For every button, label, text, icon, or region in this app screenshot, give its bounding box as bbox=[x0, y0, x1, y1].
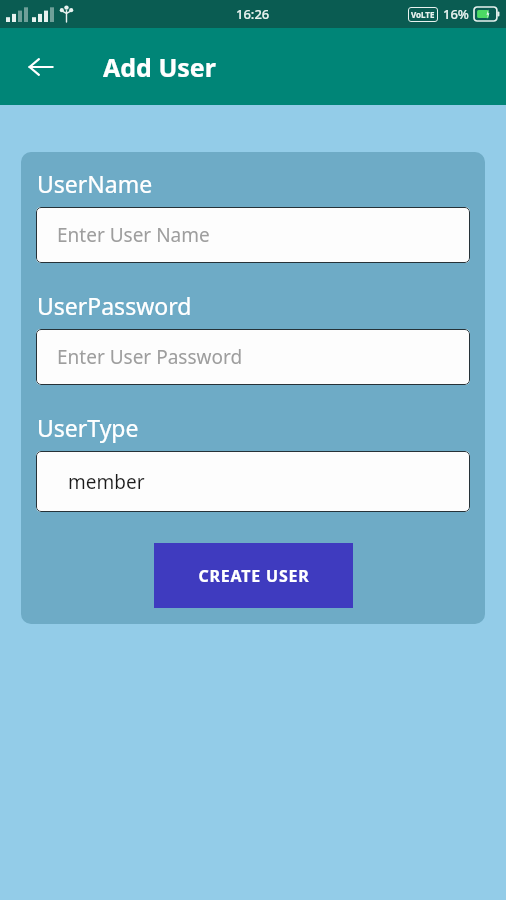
button[interactable]: member bbox=[36, 451, 470, 512]
button[interactable]: CREATE USER bbox=[154, 543, 353, 608]
staticText: VoLTE bbox=[411, 9, 435, 20]
staticText: member bbox=[68, 469, 145, 495]
button[interactable]: Enter User Password bbox=[36, 329, 470, 385]
staticText: 16% bbox=[443, 5, 469, 23]
button[interactable]: Enter User Name bbox=[36, 207, 470, 263]
staticText: CREATE USER bbox=[198, 565, 310, 587]
staticText: Enter User Name bbox=[57, 222, 210, 248]
staticText: 16:26 bbox=[236, 5, 270, 23]
staticText: UserPassword bbox=[37, 290, 192, 321]
staticText: Add User bbox=[103, 50, 216, 84]
staticText: UserType bbox=[37, 412, 139, 443]
staticText: UserName bbox=[37, 168, 153, 199]
staticText: Enter User Password bbox=[57, 344, 243, 370]
button[interactable]: Back bbox=[17, 43, 65, 91]
